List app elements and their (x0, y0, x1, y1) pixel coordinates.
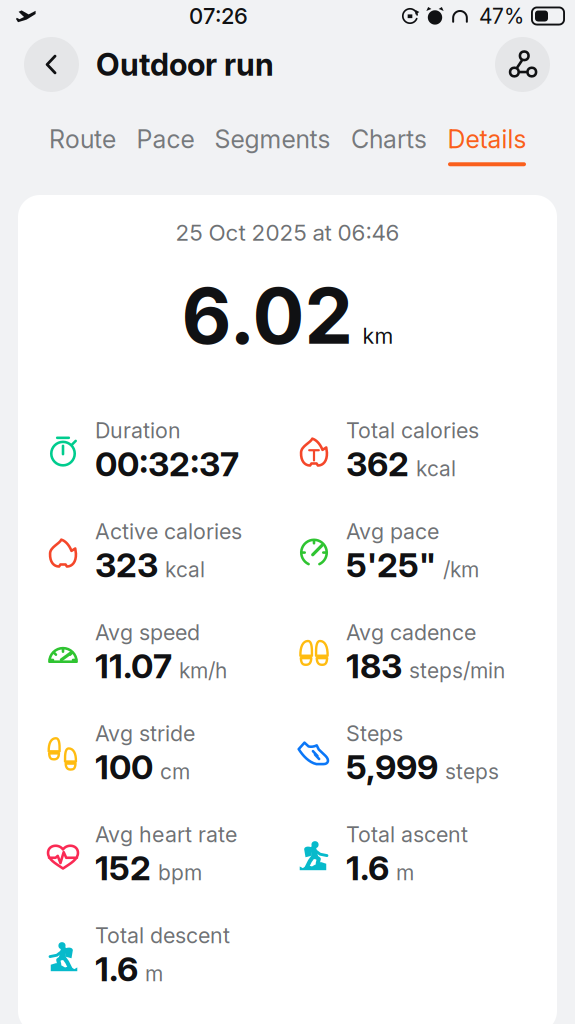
staticText: kcal (165, 557, 205, 582)
staticText: Segments (214, 124, 330, 154)
staticText: Pace (136, 124, 194, 154)
staticText: 5,999 (346, 746, 438, 787)
button[interactable]: Share (495, 37, 550, 92)
button[interactable]: Avg pace (297, 501, 548, 602)
staticText: 00:32:37 (95, 443, 239, 484)
staticText: bpm (158, 860, 202, 885)
staticText: Avg pace (346, 518, 439, 544)
button[interactable]: Segments (204, 97, 341, 169)
button[interactable]: Avg stride (46, 703, 297, 804)
staticText: 1.6 (95, 948, 138, 989)
staticText: 07:26 (189, 3, 248, 29)
button[interactable]: Steps (297, 703, 548, 804)
staticText: Avg heart rate (95, 821, 237, 847)
button[interactable]: Active calories (46, 501, 297, 602)
staticText: 362 (346, 443, 409, 484)
staticText: Outdoor run (96, 46, 274, 83)
staticText: 152 (95, 847, 151, 888)
staticText: 323 (95, 544, 158, 585)
staticText: Details (447, 124, 526, 154)
button[interactable]: Total descent (46, 905, 297, 1006)
staticText: Avg stride (95, 720, 195, 746)
button[interactable]: Total calories (297, 400, 548, 501)
staticText: Charts (351, 124, 427, 154)
staticText: kcal (416, 456, 456, 481)
staticText: 25 Oct 2025 at 06:46 (175, 219, 399, 246)
staticText: 47% (479, 3, 524, 29)
staticText: km (362, 323, 393, 349)
button[interactable]: Route (38, 97, 127, 169)
button[interactable]: Avg speed (46, 602, 297, 703)
button[interactable]: Details (437, 97, 537, 169)
button[interactable]: Duration (46, 400, 297, 501)
staticText: km/h (179, 658, 227, 683)
staticText: Steps (346, 720, 403, 746)
staticText: Total calories (346, 417, 479, 443)
button[interactable]: Total ascent (297, 804, 548, 905)
staticText: 100 (95, 746, 153, 787)
staticText: steps (445, 759, 499, 784)
staticText: /km (443, 557, 479, 582)
staticText: Route (49, 124, 116, 154)
staticText: 6.02 (181, 269, 353, 362)
staticText: 5'25" (346, 544, 436, 585)
staticText: 11.07 (95, 645, 172, 686)
staticText: 1.6 (346, 847, 389, 888)
button[interactable]: Avg cadence (297, 602, 548, 703)
staticText: m (145, 961, 163, 986)
staticText: Duration (95, 417, 181, 443)
staticText: 183 (346, 645, 402, 686)
button[interactable]: Pace (127, 97, 204, 169)
button[interactable]: Charts (341, 97, 437, 169)
staticText: Active calories (95, 518, 242, 544)
staticText: steps/min (409, 658, 505, 683)
button[interactable]: Back (24, 37, 79, 92)
staticText: m (396, 860, 414, 885)
staticText: Avg cadence (346, 619, 476, 645)
staticText: Total ascent (346, 821, 468, 847)
staticText: cm (160, 759, 190, 784)
button[interactable]: Avg heart rate (46, 804, 297, 905)
staticText: Total descent (95, 922, 230, 948)
staticText: Avg speed (95, 619, 200, 645)
